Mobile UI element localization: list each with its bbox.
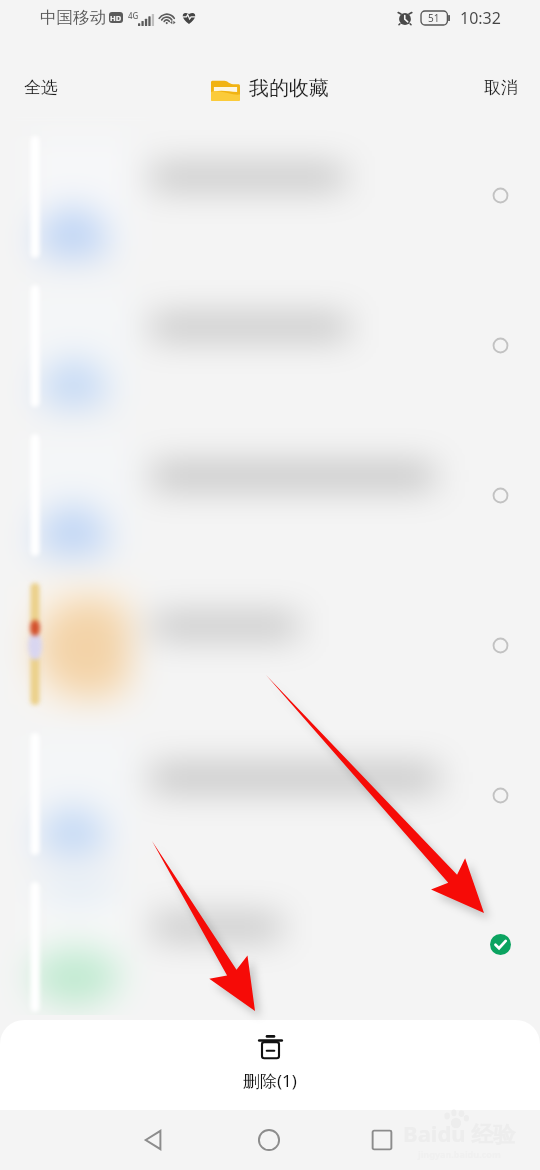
staticText: 我的收藏 bbox=[249, 76, 329, 101]
staticText: 51 bbox=[428, 11, 440, 25]
button[interactable]: Select item bbox=[470, 170, 530, 220]
button[interactable]: Select item bbox=[470, 320, 530, 370]
button[interactable]: Back bbox=[124, 1111, 182, 1169]
button[interactable]: Select item bbox=[470, 620, 530, 670]
staticText: 全选 bbox=[24, 77, 58, 98]
button[interactable]: Recents bbox=[353, 1111, 411, 1169]
staticText: 10:32 bbox=[460, 7, 501, 29]
staticText: 4G bbox=[128, 10, 139, 21]
staticText: 删除(1) bbox=[243, 1069, 297, 1092]
button[interactable]: 取消 bbox=[460, 63, 540, 112]
staticText: 取消 bbox=[484, 77, 518, 98]
staticText: 中国移动 bbox=[40, 7, 106, 28]
button[interactable]: Select item bbox=[470, 470, 530, 520]
button[interactable]: Selected item bbox=[470, 919, 530, 969]
button[interactable]: 删除(1) bbox=[0, 1020, 540, 1110]
staticText: Baidu 经验 bbox=[403, 1118, 516, 1148]
button[interactable]: Home bbox=[240, 1111, 298, 1169]
button[interactable]: Select item bbox=[470, 770, 530, 820]
button[interactable]: 全选 bbox=[0, 63, 82, 112]
staticText: HD bbox=[110, 13, 122, 23]
